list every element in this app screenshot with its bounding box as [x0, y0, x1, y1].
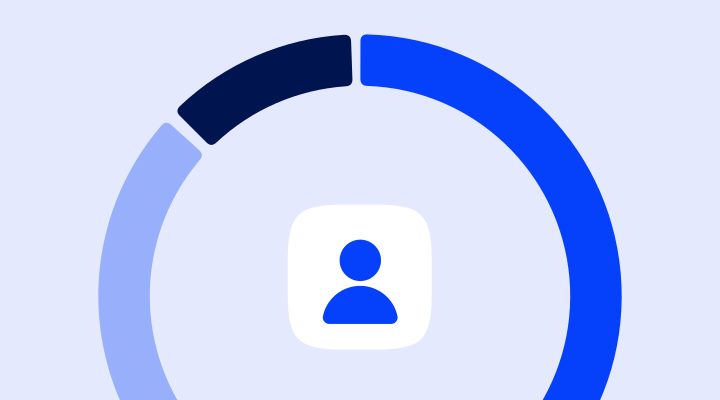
button[interactable]: Profile	[288, 205, 432, 350]
